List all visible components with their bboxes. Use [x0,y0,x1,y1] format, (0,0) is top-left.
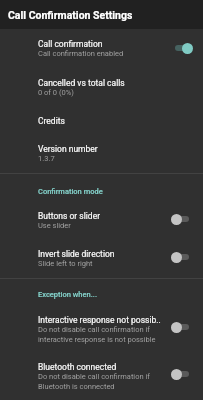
staticText: Call confirmation [38,39,103,49]
button[interactable]: Invert slide direction [0,240,203,277]
button[interactable] [171,37,203,59]
staticText: Bluetooth connected [38,362,117,372]
button[interactable] [171,246,203,268]
button[interactable]: Bluetooth connected [0,352,203,398]
button[interactable]: Cancelled vs total calls [0,69,203,106]
staticText: Slide left to right [38,259,93,268]
staticText: Interactive response not possib.. [38,315,161,325]
button[interactable]: Credits [0,107,203,134]
staticText: Exception when... [38,290,97,299]
staticText: Call Confirmation Settings [8,9,133,21]
staticText: Call confirmation enabled [38,49,124,58]
staticText: Use slider [38,221,71,230]
staticText: Confirmation mode [38,187,103,196]
button[interactable]: Call confirmation [0,30,203,68]
button[interactable]: Interactive response not possib.. [0,305,203,351]
staticText: Buttons or slider [38,211,101,221]
staticText: 1.3.7 [38,154,55,163]
staticText: Credits [38,116,65,126]
button[interactable]: Version number [0,135,203,172]
staticText: 0 of 0 (0%) [38,88,74,97]
staticText: Version number [38,144,98,154]
button[interactable] [171,208,203,230]
button[interactable]: Buttons or slider [0,202,203,239]
staticText: Invert slide direction [38,249,115,259]
staticText: Do not disable call confirmation if inte… [38,325,156,344]
staticText: Cancelled vs total calls [38,78,125,88]
button[interactable] [171,316,203,338]
staticText: Do not disable call confirmation if Blue… [38,372,150,391]
button[interactable] [171,363,203,385]
